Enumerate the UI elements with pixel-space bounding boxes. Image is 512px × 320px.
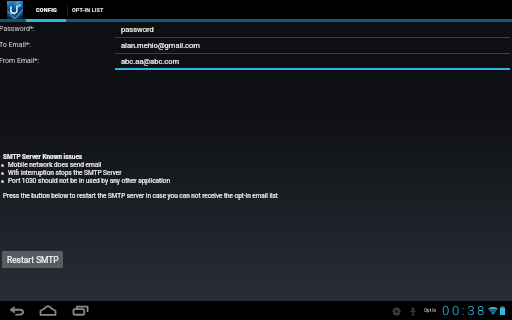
button[interactable]: CONFIG xyxy=(26,0,67,19)
staticText: Restart SMTP xyxy=(7,255,59,265)
button[interactable]: alan.mehio@gmail.com xyxy=(113,38,512,54)
button[interactable]: abc.aa@abc.com xyxy=(113,54,512,70)
staticText: Port 1030 should not be in used by any o… xyxy=(8,177,171,185)
staticText: Opt In xyxy=(424,308,437,313)
button[interactable]: password xyxy=(113,22,512,38)
staticText: 00:38 xyxy=(442,303,488,318)
button[interactable]: Home xyxy=(37,301,59,320)
button[interactable]: Back xyxy=(6,301,28,320)
staticText: abc.aa@abc.com xyxy=(121,57,180,66)
button[interactable]: Status xyxy=(389,304,403,318)
staticText: alan.mehio@gmail.com xyxy=(121,41,200,50)
staticText: CONFIG xyxy=(36,7,58,13)
button[interactable]: Restart SMTP xyxy=(2,251,63,268)
button[interactable]: Recent apps xyxy=(69,301,91,320)
staticText: Mobile network does send email xyxy=(8,161,102,169)
staticText: Password*: xyxy=(0,25,35,33)
staticText: From Email*: xyxy=(0,57,39,65)
staticText: To Email*: xyxy=(0,41,31,49)
button[interactable]: OPT-IN LIST xyxy=(68,0,109,19)
staticText: OPT-IN LIST xyxy=(72,7,104,13)
staticText: Wifi interruption stops the SMTP Server xyxy=(8,169,122,177)
button[interactable]: USB connected xyxy=(407,305,419,317)
staticText: SMTP Server Known issues xyxy=(3,153,83,161)
staticText: password xyxy=(121,25,154,34)
staticText: Press the button below to restart the SM… xyxy=(3,192,278,200)
